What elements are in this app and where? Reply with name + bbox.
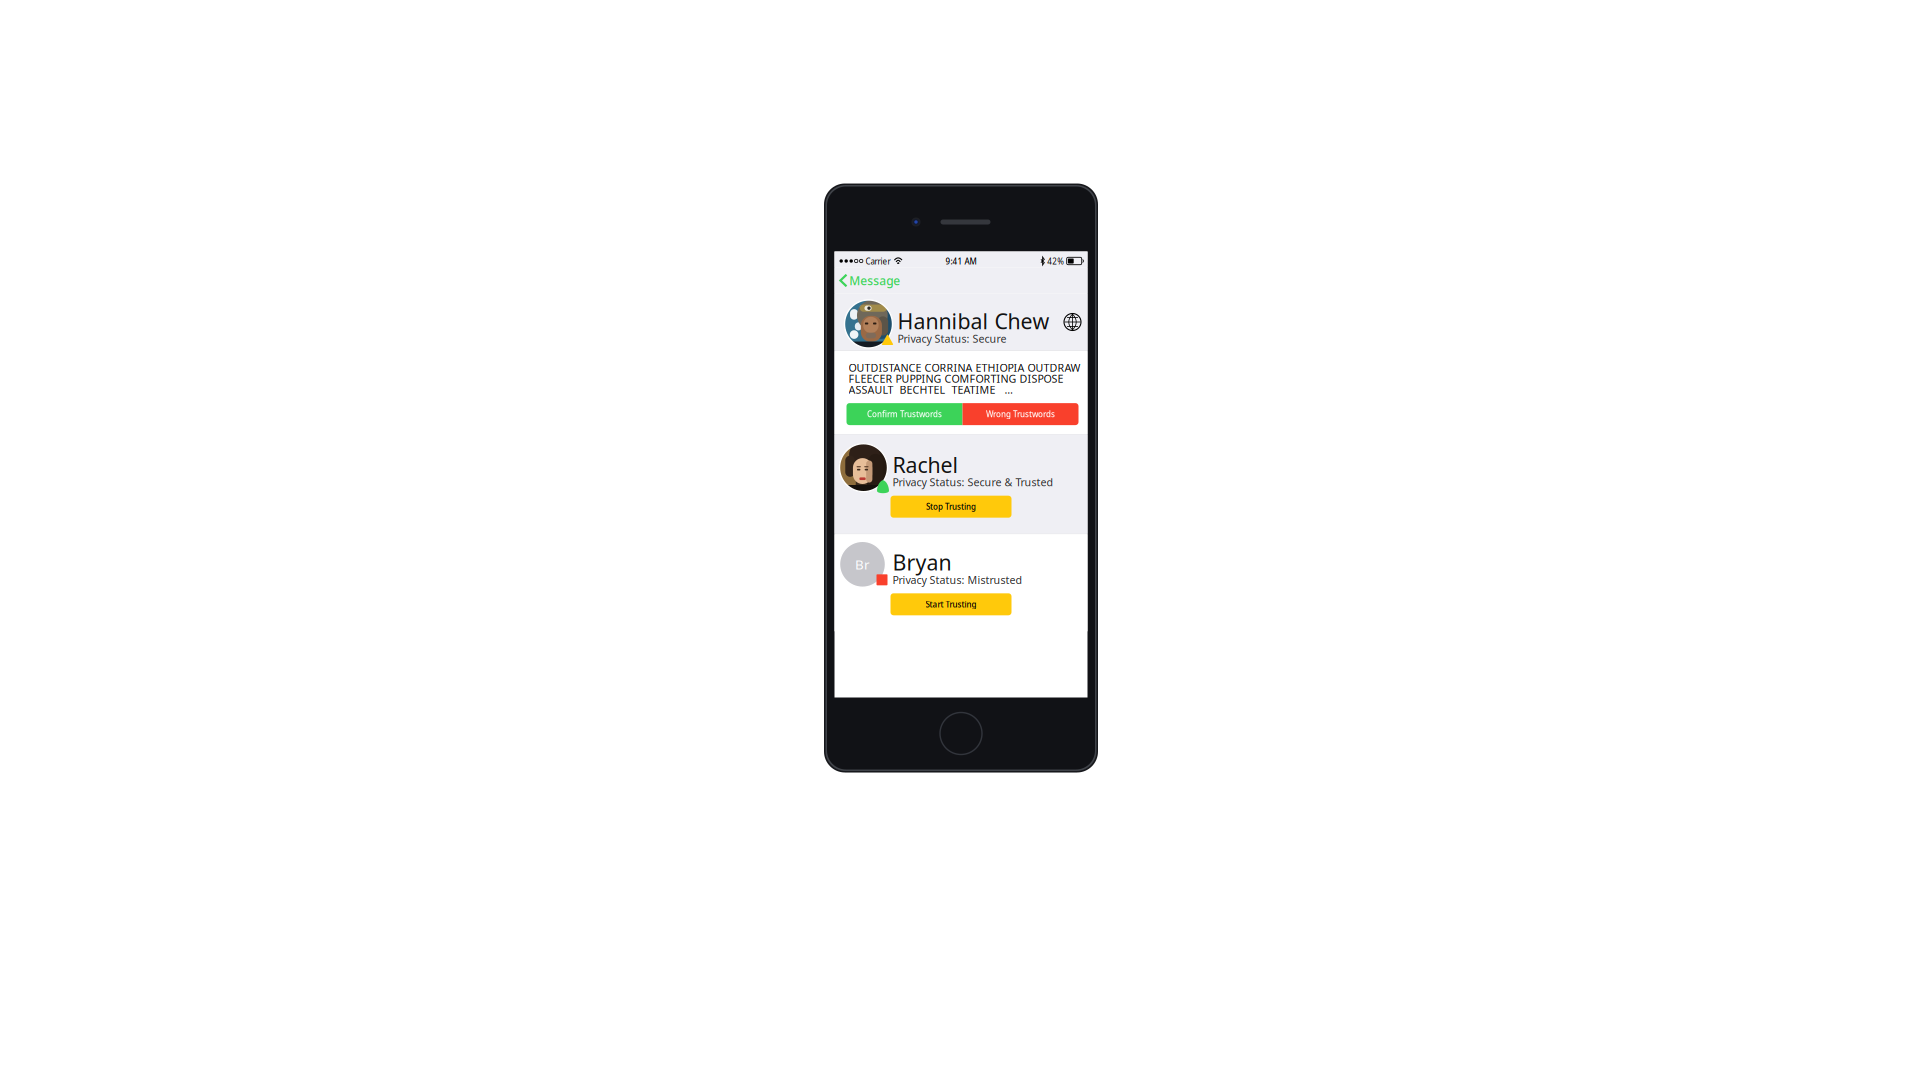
staticText: Br <box>855 555 870 573</box>
button[interactable]: Privacy language <box>1060 310 1084 334</box>
button[interactable]: Stop Trusting <box>890 496 1011 518</box>
staticText: Privacy Status: Mistrusted <box>892 573 1022 587</box>
staticText: FLEECER PUPPING COMFORTING DISPOSE <box>848 371 1063 386</box>
staticText: ASSAULT BECHTEL TEATIME … <box>848 382 1012 397</box>
staticText: Hannibal Chew <box>897 307 1049 335</box>
staticText: Message <box>849 272 900 288</box>
button[interactable]: Start Trusting <box>890 593 1011 615</box>
button[interactable]: Message <box>834 267 1087 293</box>
staticText: Carrier <box>865 256 890 267</box>
staticText: Wrong Trustwords <box>986 409 1055 419</box>
staticText: Confirm Trustwords <box>867 409 942 419</box>
staticText: Stop Trusting <box>926 501 976 512</box>
staticText: Bryan <box>892 548 951 576</box>
staticText: 42% <box>1047 256 1064 267</box>
staticText: Start Trusting <box>925 599 976 610</box>
button[interactable]: Confirm Trustwords <box>846 403 962 425</box>
staticText: Rachel <box>892 450 958 479</box>
staticText: OUTDISTANCE CORRINA ETHIOPIA OUTDRAW <box>848 360 1080 375</box>
button[interactable]: Wrong Trustwords <box>962 403 1078 425</box>
staticText: Privacy Status: Secure <box>897 331 1006 346</box>
staticText: 9:41 AM <box>945 256 976 267</box>
staticText: Privacy Status: Secure & Trusted <box>892 475 1053 489</box>
